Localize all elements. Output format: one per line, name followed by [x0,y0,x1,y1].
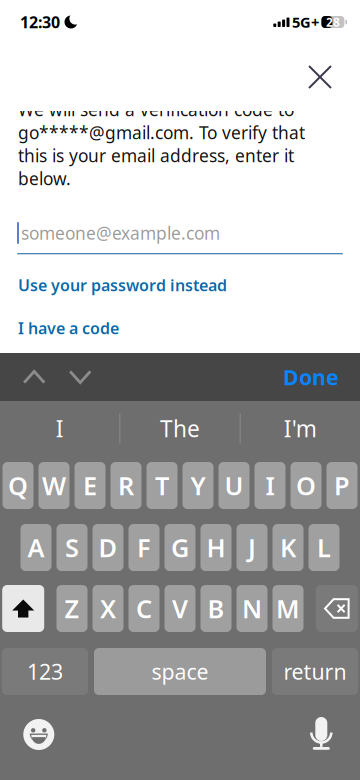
button[interactable]: R [110,462,141,509]
staticText: C [136,592,152,625]
staticText: F [137,531,151,564]
button[interactable]: E [74,462,105,509]
staticText: 12:30 [20,11,60,33]
staticText: I'm [284,413,317,443]
staticText: R [118,469,134,502]
staticText: T [155,469,169,502]
staticText: I have a code [18,317,119,339]
staticText: Use your password instead [18,274,227,296]
staticText: G [171,531,189,564]
staticText: K [280,531,296,564]
button[interactable]: U [218,462,249,509]
button[interactable]: C [128,585,159,632]
button[interactable]: O [290,462,321,509]
button[interactable]: Next field [58,355,102,399]
button[interactable]: return [272,648,358,695]
staticText: The [160,413,200,443]
button[interactable]: J [236,524,267,571]
staticText: Q [8,469,28,502]
button[interactable]: X [92,585,123,632]
staticText: M [276,592,300,625]
button[interactable]: Q [2,462,33,509]
staticText: V [172,592,188,625]
staticText: X [100,592,116,625]
staticText: S [65,531,79,564]
button[interactable]: D [92,524,123,571]
staticText: space [151,657,208,686]
button[interactable]: Use your password instead [18,273,344,297]
staticText: 28 [326,14,340,30]
staticText: Y [190,469,205,502]
button[interactable]: Close [298,55,342,99]
staticText: L [317,531,331,564]
button[interactable]: T [146,462,177,509]
button[interactable]: The [120,401,240,456]
button[interactable]: I have a code [18,316,344,340]
staticText: U [224,469,243,502]
staticText: B [207,592,224,625]
button[interactable]: 123 [2,648,88,695]
button[interactable]: B [200,585,231,632]
staticText: O [296,469,316,502]
staticText: 123 [27,657,63,686]
staticText: D [98,531,117,564]
button[interactable]: V [164,585,195,632]
staticText: We will send a verification code to go**… [18,98,305,190]
staticText: someone@example.com [21,221,220,244]
button[interactable]: Shift [2,585,44,632]
button[interactable]: F [128,524,159,571]
button[interactable]: Previous field [12,355,56,399]
button[interactable]: M [272,585,303,632]
button[interactable]: Z [56,585,87,632]
button[interactable]: W [38,462,69,509]
staticText: Z [64,592,79,625]
button[interactable]: A [20,524,51,571]
button[interactable]: I [0,401,119,456]
button[interactable]: I [254,462,285,509]
staticText: 5G+ [292,12,319,32]
staticText: return [283,657,346,686]
button[interactable]: N [236,585,267,632]
button[interactable]: Emoji [17,712,61,756]
button[interactable]: space [94,648,266,695]
staticText: N [242,592,262,625]
button[interactable]: L [308,524,339,571]
staticText: W [42,469,66,502]
button[interactable]: Delete [316,585,358,632]
staticText: H [206,531,225,564]
button[interactable]: Dictate [299,711,343,755]
staticText: E [83,469,97,502]
staticText: I [56,413,64,443]
button[interactable]: G [164,524,195,571]
staticText: P [334,469,350,502]
button[interactable]: Done [283,355,339,399]
button[interactable]: I'm [241,401,360,456]
button[interactable]: Y [182,462,213,509]
button[interactable]: S [56,524,87,571]
button[interactable]: H [200,524,231,571]
button[interactable]: P [326,462,357,509]
staticText: J [248,531,256,564]
staticText: I [265,469,274,502]
staticText: Done [283,363,339,391]
button[interactable]: K [272,524,303,571]
staticText: A [27,531,44,564]
